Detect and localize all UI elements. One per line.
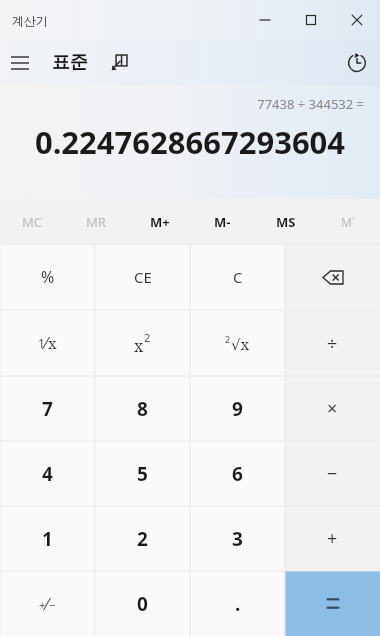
button[interactable]: + — [0, 571, 95, 636]
staticText: ⁄ — [45, 332, 48, 354]
button[interactable]: + — [285, 506, 380, 571]
staticText: 1 — [42, 526, 53, 552]
button[interactable]: . — [190, 571, 285, 636]
staticText: − — [327, 461, 338, 486]
button[interactable]: History — [334, 40, 380, 85]
button[interactable]: 1 — [0, 310, 95, 376]
staticText: MC — [22, 213, 43, 231]
staticText: 77438 ÷ 344532 = — [0, 95, 364, 113]
staticText: 6 — [232, 461, 243, 487]
staticText: + — [39, 597, 46, 612]
button[interactable]: CE — [95, 244, 190, 310]
staticText: − — [49, 597, 56, 612]
staticText: 0 — [137, 591, 148, 617]
button[interactable]: 7 — [0, 376, 95, 441]
button[interactable]: Maximize — [288, 0, 334, 40]
staticText: CE — [134, 267, 152, 287]
button[interactable]: − — [285, 441, 380, 506]
button[interactable]: MS — [254, 199, 317, 244]
button[interactable]: Close — [334, 0, 380, 40]
button[interactable]: 9 — [190, 376, 285, 441]
button[interactable] — [285, 571, 380, 636]
staticText: + — [327, 526, 338, 551]
staticText: 계산기 — [12, 13, 48, 28]
button[interactable]: C — [190, 244, 285, 310]
button[interactable]: Minimize — [242, 0, 288, 40]
button[interactable]: Menu — [0, 40, 40, 85]
staticText: C — [233, 267, 243, 287]
button[interactable]: % — [0, 244, 95, 310]
button[interactable]: M+ — [128, 199, 191, 244]
staticText: 3 — [232, 526, 243, 552]
button[interactable]: 6 — [190, 441, 285, 506]
button[interactable]: 0 — [95, 571, 190, 636]
staticText: ÷ — [327, 331, 338, 356]
button[interactable]: M- — [191, 199, 254, 244]
staticText: M˅ — [341, 214, 356, 230]
button[interactable]: 4 — [0, 441, 95, 506]
button[interactable]: 5 — [95, 441, 190, 506]
button[interactable]: MC — [0, 199, 64, 244]
staticText: MS — [276, 213, 296, 231]
button[interactable]: MR — [64, 199, 128, 244]
staticText: 7 — [42, 396, 53, 422]
staticText: % — [41, 266, 55, 288]
button[interactable]: 3 — [190, 506, 285, 571]
button[interactable]: × — [285, 376, 380, 441]
staticText: . — [235, 591, 241, 617]
staticText: MR — [86, 213, 106, 231]
button[interactable]: ÷ — [285, 310, 380, 376]
staticText: 1 — [38, 335, 45, 351]
staticText: x — [48, 333, 57, 353]
button[interactable]: x — [95, 310, 190, 376]
staticText: 8 — [137, 396, 148, 422]
staticText: M+ — [150, 213, 170, 231]
button[interactable]: 1 — [0, 506, 95, 571]
button[interactable]: 8 — [95, 376, 190, 441]
staticText: × — [327, 396, 338, 421]
staticText: M- — [214, 213, 231, 231]
staticText: x — [134, 335, 144, 357]
button[interactable]: 2 — [95, 506, 190, 571]
staticText: 2 — [137, 526, 148, 552]
staticText: ⁄ — [46, 593, 49, 615]
button[interactable]: Keep on top — [102, 40, 136, 85]
staticText: 표준 — [52, 51, 88, 74]
button[interactable]: Backspace — [285, 244, 380, 310]
button[interactable]: M˅ — [317, 199, 380, 244]
staticText: 5 — [137, 461, 148, 487]
staticText: 2 — [225, 333, 231, 345]
button[interactable]: 2 — [190, 310, 285, 376]
staticText: 9 — [232, 396, 243, 422]
staticText: 2 — [144, 330, 151, 345]
staticText: √x — [231, 334, 250, 354]
staticText: 0.2247628667293604 — [10, 121, 370, 163]
staticText: 4 — [42, 461, 53, 487]
